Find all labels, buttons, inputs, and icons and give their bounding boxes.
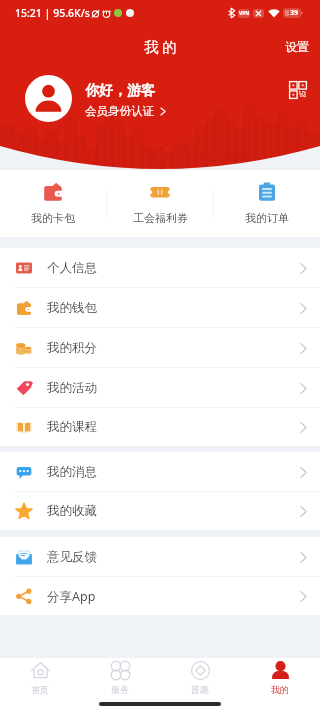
button[interactable]: 我的收藏 xyxy=(0,492,320,530)
button[interactable]: 我的消息 xyxy=(0,452,320,492)
button[interactable]: 我的卡包 xyxy=(0,170,106,237)
button[interactable]: 服务 xyxy=(80,658,160,698)
staticText: 我的课程 xyxy=(47,419,97,435)
staticText: 39 xyxy=(290,8,299,18)
staticText: 我的订单 xyxy=(245,211,289,225)
staticText: 我的积分 xyxy=(47,340,97,356)
staticText: 15:21 | 95.6K/s xyxy=(15,6,90,20)
button[interactable]: 个人信息 xyxy=(0,248,320,288)
button[interactable]: 工会福利券 xyxy=(107,170,213,237)
staticText: 我的消息 xyxy=(47,464,97,480)
button[interactable]: 普惠 xyxy=(160,658,240,698)
staticText: 普惠 xyxy=(191,684,209,695)
staticText: 我 的 xyxy=(144,36,177,56)
staticText: 工会福利券 xyxy=(133,211,188,225)
button[interactable]: 会员身份认证 xyxy=(85,104,166,118)
button[interactable]: 我的订单 xyxy=(214,170,320,237)
button[interactable]: 我的钱包 xyxy=(0,288,320,328)
staticText: 分享App xyxy=(47,588,96,605)
staticText: 你好，游客 xyxy=(85,82,155,100)
staticText: 首页 xyxy=(31,684,49,695)
staticText: 我的活动 xyxy=(47,380,97,396)
staticText: 个人信息 xyxy=(47,260,97,276)
staticText: 我的钱包 xyxy=(47,300,97,316)
staticText: 我的卡包 xyxy=(31,211,75,225)
staticText: 服务 xyxy=(111,684,129,695)
button[interactable]: 我的课程 xyxy=(0,408,320,446)
staticText: VPN xyxy=(239,10,250,17)
button[interactable]: 我的活动 xyxy=(0,368,320,408)
staticText: 我的收藏 xyxy=(47,503,97,519)
button[interactable]: 我的积分 xyxy=(0,328,320,368)
staticText: 我的 xyxy=(271,684,289,695)
button[interactable]: 设置 xyxy=(274,34,320,59)
button[interactable]: 扫一扫 xyxy=(289,81,307,99)
button[interactable]: 意见反馈 xyxy=(0,537,320,577)
button[interactable]: 我的 xyxy=(240,658,320,698)
staticText: 意见反馈 xyxy=(47,549,97,565)
button[interactable]: 首页 xyxy=(0,658,80,698)
staticText: 会员身份认证 xyxy=(85,104,154,118)
button[interactable]: 分享App xyxy=(0,577,320,615)
staticText: 设置 xyxy=(285,39,309,54)
button[interactable]: 头像 xyxy=(25,75,72,122)
